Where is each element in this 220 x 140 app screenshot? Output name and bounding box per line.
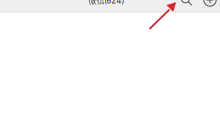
- staticText: 微信(624): [88, 0, 123, 6]
- button[interactable]: Add: [203, 0, 217, 7]
- button[interactable]: Search: [180, 0, 193, 6]
